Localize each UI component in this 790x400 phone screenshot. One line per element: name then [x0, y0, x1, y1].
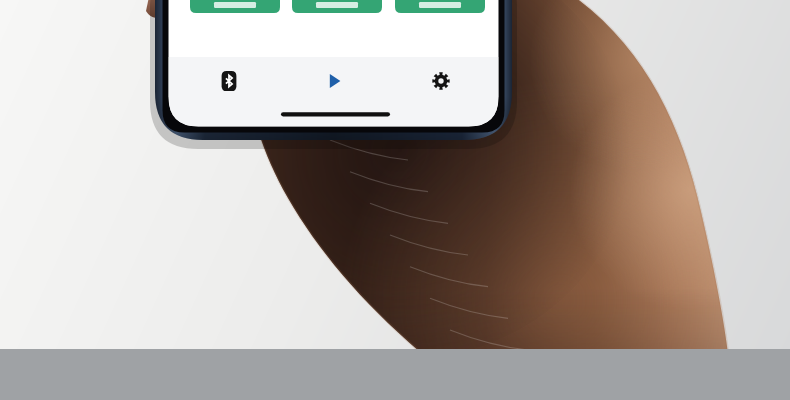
- button[interactable]: Play: [316, 63, 352, 99]
- button[interactable]: Settings: [423, 63, 459, 99]
- button[interactable]: Action 1: [190, 0, 280, 14]
- button[interactable]: Bluetooth: [211, 63, 247, 99]
- button[interactable]: Action 2: [292, 0, 382, 14]
- button[interactable]: Action 3: [395, 0, 485, 14]
